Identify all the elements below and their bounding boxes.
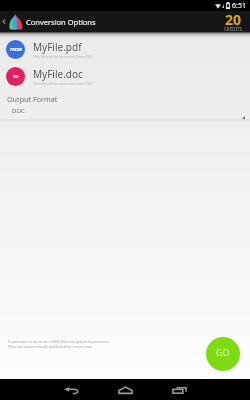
staticText: Conversion is done on a SHA-256 encrypte… <box>8 339 110 349</box>
staticText: GO <box>216 346 230 358</box>
button[interactable]: Home <box>114 379 136 400</box>
staticText: DOC <box>12 107 25 115</box>
staticText: 6:51 <box>232 1 246 11</box>
button[interactable]: GO <box>206 337 240 371</box>
staticText: CREDITS <box>224 26 242 32</box>
button[interactable]: TO <box>0 67 250 86</box>
staticText: TO <box>13 74 19 79</box>
button[interactable]: Back <box>0 11 8 32</box>
staticText: Conversion Options <box>26 17 96 27</box>
button[interactable]: Back <box>60 379 82 400</box>
staticText: Output Format <box>7 94 58 104</box>
staticText: This file will be converted from PDF <box>33 54 93 59</box>
staticText: MyFile.pdf <box>33 40 82 54</box>
staticText: FROM <box>10 47 22 52</box>
button[interactable]: FROM <box>0 40 250 59</box>
staticText: 20 <box>225 10 242 29</box>
button[interactable]: DOC <box>0 107 250 121</box>
button[interactable]: Recents <box>168 379 190 400</box>
staticText: This file will be converted from PDF <box>33 81 93 86</box>
button[interactable]: 20 <box>217 11 249 32</box>
staticText: MyFile.doc <box>33 67 83 81</box>
